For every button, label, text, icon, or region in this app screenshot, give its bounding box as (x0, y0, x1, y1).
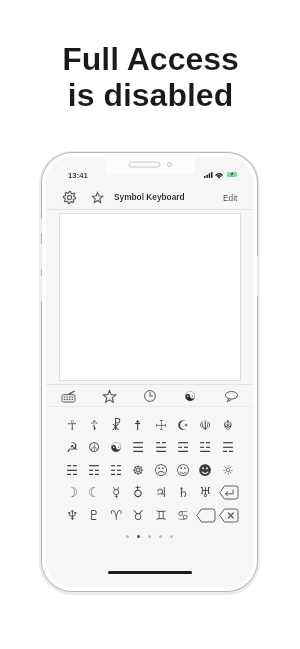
button[interactable] (194, 504, 216, 526)
button[interactable]: ☫ (194, 414, 216, 436)
button[interactable]: Edit (219, 189, 241, 205)
button[interactable]: ♄ (172, 481, 194, 503)
staticText: ♋ (177, 507, 190, 523)
button[interactable]: ☼ (217, 459, 239, 481)
staticText: ♄ (177, 484, 190, 500)
button[interactable]: Favorites (88, 188, 106, 206)
button[interactable]: ☻ (194, 459, 216, 481)
button[interactable]: ☰ (127, 436, 149, 458)
staticText: ☿ (112, 484, 121, 500)
staticText: ♃ (155, 484, 168, 500)
button[interactable]: ♁ (127, 481, 149, 503)
staticText: ☹ (154, 462, 169, 478)
button[interactable]: ☿ (105, 481, 127, 503)
staticText: ☫ (199, 417, 212, 433)
button[interactable]: ☷ (105, 459, 127, 481)
staticText: ☳ (199, 439, 212, 455)
staticText: ☻ (198, 462, 213, 478)
button[interactable]: Keyboard (58, 386, 78, 406)
staticText: ☼ (222, 462, 235, 478)
staticText: ☦ (90, 417, 99, 433)
button[interactable]: ☩ (150, 414, 172, 436)
button[interactable]: ☭ (61, 436, 83, 458)
staticText: ☯ (184, 388, 197, 404)
staticText: ♈ (110, 507, 123, 523)
button[interactable]: ☸ (127, 459, 149, 481)
staticText: ☩ (155, 417, 168, 433)
staticText: ♊ (155, 507, 168, 523)
button[interactable]: ☦ (83, 414, 105, 436)
staticText: ☱ (155, 439, 168, 455)
button[interactable]: ♃ (150, 481, 172, 503)
staticText: Full Access is disabled (62, 41, 239, 113)
button[interactable]: Symbols (180, 386, 200, 406)
staticText: ☶ (88, 462, 101, 478)
button[interactable]: ☾ (83, 481, 105, 503)
button[interactable]: ☶ (83, 459, 105, 481)
staticText: ♅ (199, 484, 212, 500)
staticText: ☪ (177, 417, 190, 433)
staticText: ☮ (88, 439, 101, 455)
button[interactable]: ☥ (61, 414, 83, 436)
button[interactable]: ☵ (61, 459, 83, 481)
staticText: ☬ (223, 417, 233, 433)
staticText: ☨ (134, 417, 142, 433)
button[interactable]: ☴ (217, 436, 239, 458)
staticText: Symbol Keyboard (114, 192, 185, 201)
staticText: ♉ (132, 507, 145, 523)
staticText: ☰ (132, 439, 145, 455)
staticText: ♇ (88, 507, 101, 523)
button[interactable]: ☽ (61, 481, 83, 503)
button[interactable]: Settings (60, 188, 78, 206)
button[interactable] (217, 481, 239, 503)
button[interactable]: Favorites (99, 386, 119, 406)
button[interactable]: ☲ (172, 436, 194, 458)
button[interactable]: ☨ (127, 414, 149, 436)
button[interactable]: Emoticons (221, 386, 241, 406)
staticText: ☭ (66, 439, 79, 455)
staticText: ☴ (222, 439, 235, 455)
button[interactable]: ♈ (105, 504, 127, 526)
button[interactable]: ♆ (61, 504, 83, 526)
staticText: ♁ (133, 484, 143, 500)
button[interactable]: ♉ (127, 504, 149, 526)
button[interactable]: ♊ (150, 504, 172, 526)
staticText: ♆ (66, 507, 79, 523)
staticText: ☽ (66, 484, 79, 500)
staticText: ☵ (66, 462, 79, 478)
button[interactable]: ☮ (83, 436, 105, 458)
staticText: ☷ (110, 462, 123, 478)
button[interactable] (217, 504, 239, 526)
button[interactable]: ☹ (150, 459, 172, 481)
button[interactable]: ☧ (105, 414, 127, 436)
button[interactable]: ☬ (217, 414, 239, 436)
staticText: Edit (223, 193, 238, 202)
button[interactable]: ☪ (172, 414, 194, 436)
button[interactable]: ♋ (172, 504, 194, 526)
staticText: ☲ (177, 439, 190, 455)
staticText: ☧ (111, 417, 122, 433)
button[interactable]: ♇ (83, 504, 105, 526)
staticText: ☾ (88, 484, 101, 500)
button[interactable]: ☱ (150, 436, 172, 458)
button[interactable]: ♅ (194, 481, 216, 503)
staticText: ☯ (110, 439, 123, 455)
staticText: ☥ (67, 417, 78, 433)
staticText: ☸ (132, 462, 145, 478)
button[interactable]: Recently used (140, 386, 160, 406)
staticText: 13:41 (68, 171, 88, 180)
button[interactable]: ☺ (172, 459, 194, 481)
staticText: ☺ (176, 462, 191, 478)
button[interactable]: ☯ (105, 436, 127, 458)
button[interactable]: ☳ (194, 436, 216, 458)
